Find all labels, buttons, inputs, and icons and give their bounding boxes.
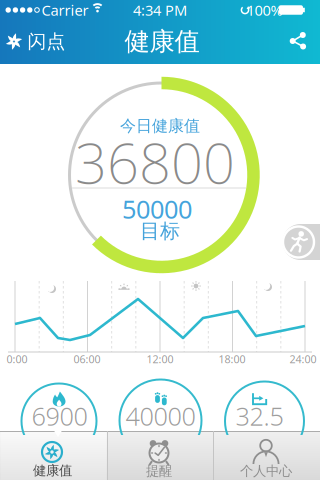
staticText: 06:00 <box>73 352 100 366</box>
staticText: 今日健康值 <box>120 116 200 136</box>
staticText: 目标 <box>140 219 180 243</box>
staticText: 24:00 <box>289 352 316 366</box>
staticText: 12:00 <box>146 352 173 366</box>
button[interactable]: 6900 <box>19 381 98 460</box>
staticText: 个人中心 <box>240 463 292 479</box>
staticText: 健康值 <box>33 462 72 479</box>
button[interactable]: 健康值 <box>0 431 107 480</box>
staticText: 32.5 <box>235 399 283 433</box>
button[interactable]: Run <box>282 224 320 260</box>
button[interactable]: 提醒 <box>107 431 213 480</box>
staticText: 40000 <box>125 399 195 433</box>
staticText: 闪点 <box>27 30 65 53</box>
staticText: 健康值 <box>124 26 199 57</box>
staticText: 50000 <box>122 192 192 226</box>
staticText: 提醒 <box>146 463 172 479</box>
staticText: 0:00 <box>6 352 27 366</box>
staticText: 18:00 <box>218 352 245 366</box>
button[interactable]: 40000 <box>117 377 203 463</box>
button[interactable]: 32.5 <box>223 379 306 462</box>
staticText: 6900 <box>31 399 87 433</box>
staticText: 4:34 PM <box>133 0 187 20</box>
button[interactable]: Share <box>289 28 306 52</box>
button[interactable]: 个人中心 <box>213 431 319 480</box>
button[interactable]: 闪点 <box>5 30 65 53</box>
staticText: 100% <box>246 0 282 20</box>
staticText: 36800 <box>75 125 235 199</box>
staticText: Carrier <box>41 0 88 20</box>
